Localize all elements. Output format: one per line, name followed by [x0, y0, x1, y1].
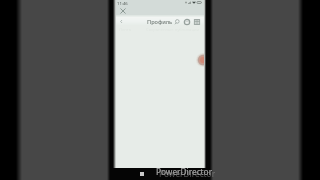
- button[interactable]: Search: [174, 19, 180, 25]
- staticText: PowerDirector: [159, 168, 216, 179]
- button[interactable]: Scan: [184, 19, 190, 25]
- staticText: 11:46: [117, 1, 128, 7]
- button[interactable]: Back: [119, 19, 124, 24]
- staticText: PowerDirector: [156, 166, 213, 177]
- button[interactable]: Add: [196, 53, 204, 67]
- button[interactable]: Close: [120, 8, 126, 14]
- staticText: Профиль: [147, 18, 173, 26]
- button[interactable]: Layout: [194, 19, 200, 25]
